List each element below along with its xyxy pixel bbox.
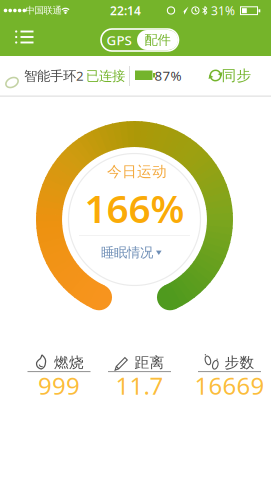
staticText: 睡眠情况	[101, 244, 153, 261]
button[interactable]: GPS	[101, 29, 137, 51]
button[interactable]: 智能手环2	[2, 56, 126, 96]
staticText: 87%	[154, 67, 181, 84]
staticText: 11.7	[115, 370, 163, 401]
staticText: 同步	[221, 66, 251, 84]
button[interactable]: 睡眠情况	[100, 242, 168, 263]
staticText: 燃烧	[54, 353, 84, 371]
staticText: GPS	[106, 31, 131, 49]
staticText: 配件	[144, 32, 170, 48]
staticText: 166%	[84, 182, 184, 234]
staticText: 22:14	[110, 2, 141, 18]
button[interactable]	[9, 24, 39, 50]
staticText: 今日运动	[107, 162, 167, 180]
staticText: 智能手环2	[24, 67, 84, 84]
staticText: 距离	[134, 353, 164, 371]
staticText: 16669	[194, 370, 264, 401]
button[interactable]: 配件	[137, 29, 178, 51]
staticText: 999	[38, 370, 80, 401]
staticText: 31%	[211, 2, 235, 18]
staticText: 中国联通	[25, 5, 61, 16]
staticText: 已连接	[86, 68, 125, 84]
button[interactable]: 同步	[207, 63, 257, 88]
staticText: 步数	[224, 353, 254, 371]
